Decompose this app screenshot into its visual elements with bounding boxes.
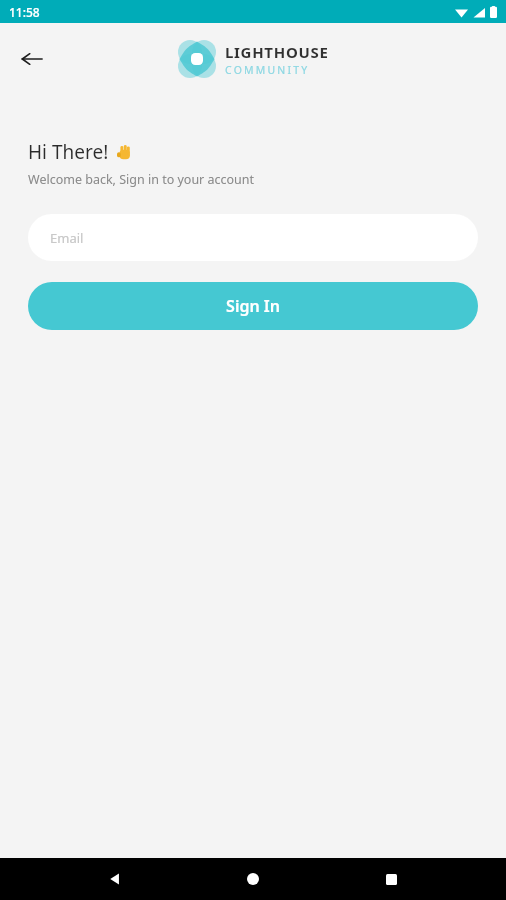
button[interactable]: Back [92,858,138,900]
staticText: Email [50,229,84,247]
button[interactable]: Back [10,37,54,81]
button[interactable]: Sign In [28,282,478,330]
button[interactable]: Email [28,214,478,261]
staticText: 11:58 [9,4,40,20]
button[interactable]: Recent apps [368,858,414,900]
staticText: Welcome back, Sign in to your account [28,171,255,188]
staticText: LIGHTHOUSE [225,42,329,62]
staticText: Sign In [226,295,280,317]
staticText: COMMUNITY [225,63,310,77]
button[interactable]: Home [230,858,276,900]
staticText: Hi There! [28,139,109,165]
